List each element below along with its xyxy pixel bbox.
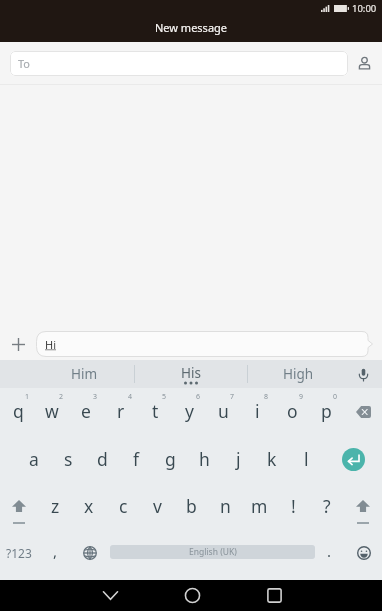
button[interactable] xyxy=(289,437,323,483)
staticText: Him xyxy=(71,365,98,383)
button[interactable] xyxy=(51,437,85,483)
staticText: 5 xyxy=(162,392,167,402)
button[interactable] xyxy=(276,485,310,531)
staticText: q xyxy=(13,399,24,423)
button[interactable] xyxy=(1,389,35,435)
button[interactable]: To xyxy=(10,51,348,76)
staticText: s xyxy=(64,447,73,471)
staticText: n xyxy=(220,494,231,518)
button[interactable] xyxy=(35,389,69,435)
staticText: English (UK) xyxy=(189,546,237,558)
button[interactable]: Home xyxy=(174,580,210,611)
staticText: b xyxy=(186,494,197,518)
staticText: w xyxy=(45,399,59,423)
staticText: 0 xyxy=(333,392,338,402)
button[interactable] xyxy=(140,485,174,531)
button[interactable] xyxy=(310,485,344,531)
button[interactable] xyxy=(72,485,106,531)
staticText: New message xyxy=(155,20,228,35)
button[interactable] xyxy=(240,389,274,435)
button[interactable]: Shift xyxy=(346,485,380,531)
staticText: To xyxy=(18,56,31,71)
staticText: 7 xyxy=(230,392,235,402)
staticText: g xyxy=(165,447,176,471)
button[interactable]: Hi xyxy=(36,331,373,357)
staticText: u xyxy=(218,399,229,423)
staticText: His xyxy=(181,364,201,382)
button[interactable] xyxy=(208,485,242,531)
button[interactable]: Recent apps xyxy=(256,580,292,611)
button[interactable] xyxy=(242,485,276,531)
staticText: ? xyxy=(323,494,331,518)
button[interactable] xyxy=(309,389,343,435)
button[interactable]: His xyxy=(134,360,247,388)
button[interactable]: Change language xyxy=(74,532,106,574)
staticText: 1 xyxy=(25,392,30,402)
staticText: l xyxy=(304,447,309,471)
staticText: 9 xyxy=(299,392,304,402)
staticText: t xyxy=(152,399,159,423)
staticText: f xyxy=(133,447,140,471)
button[interactable]: High xyxy=(247,360,345,388)
staticText: 3 xyxy=(93,392,98,402)
staticText: 2 xyxy=(59,392,64,402)
button[interactable]: ?123 xyxy=(0,532,38,574)
staticText: . xyxy=(327,541,332,561)
button[interactable] xyxy=(106,485,140,531)
button[interactable] xyxy=(255,437,289,483)
button[interactable]: Enter xyxy=(342,448,365,471)
button[interactable] xyxy=(275,389,309,435)
button[interactable] xyxy=(38,485,72,531)
staticText: c xyxy=(119,494,128,518)
button[interactable] xyxy=(187,437,221,483)
button[interactable] xyxy=(172,389,206,435)
button[interactable] xyxy=(69,389,103,435)
button[interactable]: Emoji xyxy=(347,532,381,574)
button[interactable]: Voice input xyxy=(345,360,382,388)
button[interactable] xyxy=(206,389,240,435)
button[interactable]: Back xyxy=(92,580,128,611)
staticText: 6 xyxy=(196,392,201,402)
button[interactable] xyxy=(17,437,51,483)
staticText: r xyxy=(117,399,125,423)
button[interactable] xyxy=(174,485,208,531)
button[interactable]: , xyxy=(39,532,71,574)
staticText: 4 xyxy=(128,392,133,402)
staticText: a xyxy=(29,447,39,471)
staticText: 10:00 xyxy=(352,2,377,15)
staticText: , xyxy=(53,541,58,561)
staticText: ?123 xyxy=(6,545,32,561)
button[interactable]: Add attachment xyxy=(6,332,30,356)
staticText: ! xyxy=(291,494,296,518)
button[interactable]: Shift xyxy=(2,485,36,531)
staticText: o xyxy=(287,399,298,423)
staticText: h xyxy=(199,447,210,471)
button[interactable]: English (UK) xyxy=(110,545,315,559)
staticText: Hi xyxy=(45,337,56,352)
button[interactable] xyxy=(221,437,255,483)
staticText: e xyxy=(81,399,91,423)
staticText: 8 xyxy=(264,392,269,402)
staticText: j xyxy=(236,447,241,471)
staticText: k xyxy=(267,447,277,471)
staticText: p xyxy=(321,399,332,423)
button[interactable] xyxy=(153,437,187,483)
staticText: i xyxy=(255,399,260,423)
button[interactable] xyxy=(85,437,119,483)
staticText: d xyxy=(97,447,108,471)
button[interactable] xyxy=(119,437,153,483)
button[interactable] xyxy=(138,389,172,435)
button[interactable]: Pick contact xyxy=(352,51,377,76)
staticText: x xyxy=(84,494,94,518)
staticText: z xyxy=(51,494,60,518)
staticText: High xyxy=(283,365,314,383)
staticText: m xyxy=(251,494,268,518)
button[interactable]: Backspace xyxy=(345,389,382,435)
button[interactable] xyxy=(104,389,138,435)
staticText: v xyxy=(153,494,162,518)
button[interactable]: Him xyxy=(0,360,134,388)
button[interactable]: . xyxy=(313,532,345,574)
staticText: y xyxy=(185,399,194,423)
